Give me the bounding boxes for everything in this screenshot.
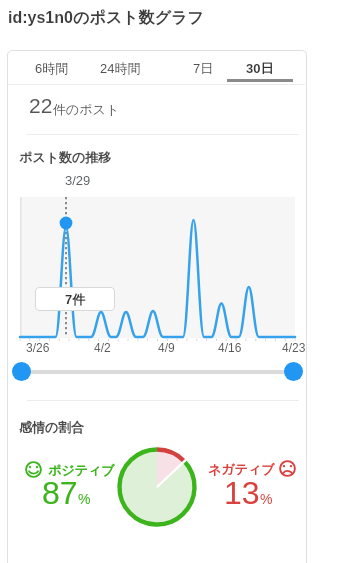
staticText: 13 <box>224 475 260 511</box>
staticText: 4/9 <box>158 341 175 354</box>
staticText: % <box>78 491 91 507</box>
button[interactable]: 6時間 <box>22 51 82 84</box>
staticText: ネガティブ <box>208 461 275 477</box>
staticText: 4/16 <box>218 341 242 354</box>
staticText: 3/29 <box>65 173 91 188</box>
staticText: 30日 <box>246 60 274 76</box>
staticText: ポジティブ <box>48 462 115 478</box>
button[interactable]: 13 <box>224 475 273 511</box>
button[interactable]: 30日 <box>227 51 293 84</box>
staticText: 87 <box>42 475 78 511</box>
staticText: 7件 <box>65 291 86 307</box>
staticText: 22 <box>29 94 53 117</box>
button[interactable]: 7日 <box>173 51 233 84</box>
button[interactable] <box>284 362 303 381</box>
staticText: ポスト数の推移 <box>19 149 112 165</box>
button[interactable]: 24時間 <box>88 51 152 84</box>
staticText: 件のポスト <box>53 101 120 117</box>
button[interactable] <box>12 362 31 381</box>
staticText: 3/26 <box>26 341 50 354</box>
staticText: 感情の割合 <box>19 419 85 435</box>
staticText: 6時間 <box>35 60 69 76</box>
staticText: id:ys1n0のポスト数グラフ <box>8 8 204 28</box>
staticText: 24時間 <box>100 60 141 76</box>
staticText: 7日 <box>193 60 214 76</box>
staticText: 4/2 <box>94 341 111 354</box>
staticText: % <box>260 491 273 507</box>
button[interactable]: 87 <box>42 475 91 511</box>
staticText: 4/23 <box>282 341 306 354</box>
